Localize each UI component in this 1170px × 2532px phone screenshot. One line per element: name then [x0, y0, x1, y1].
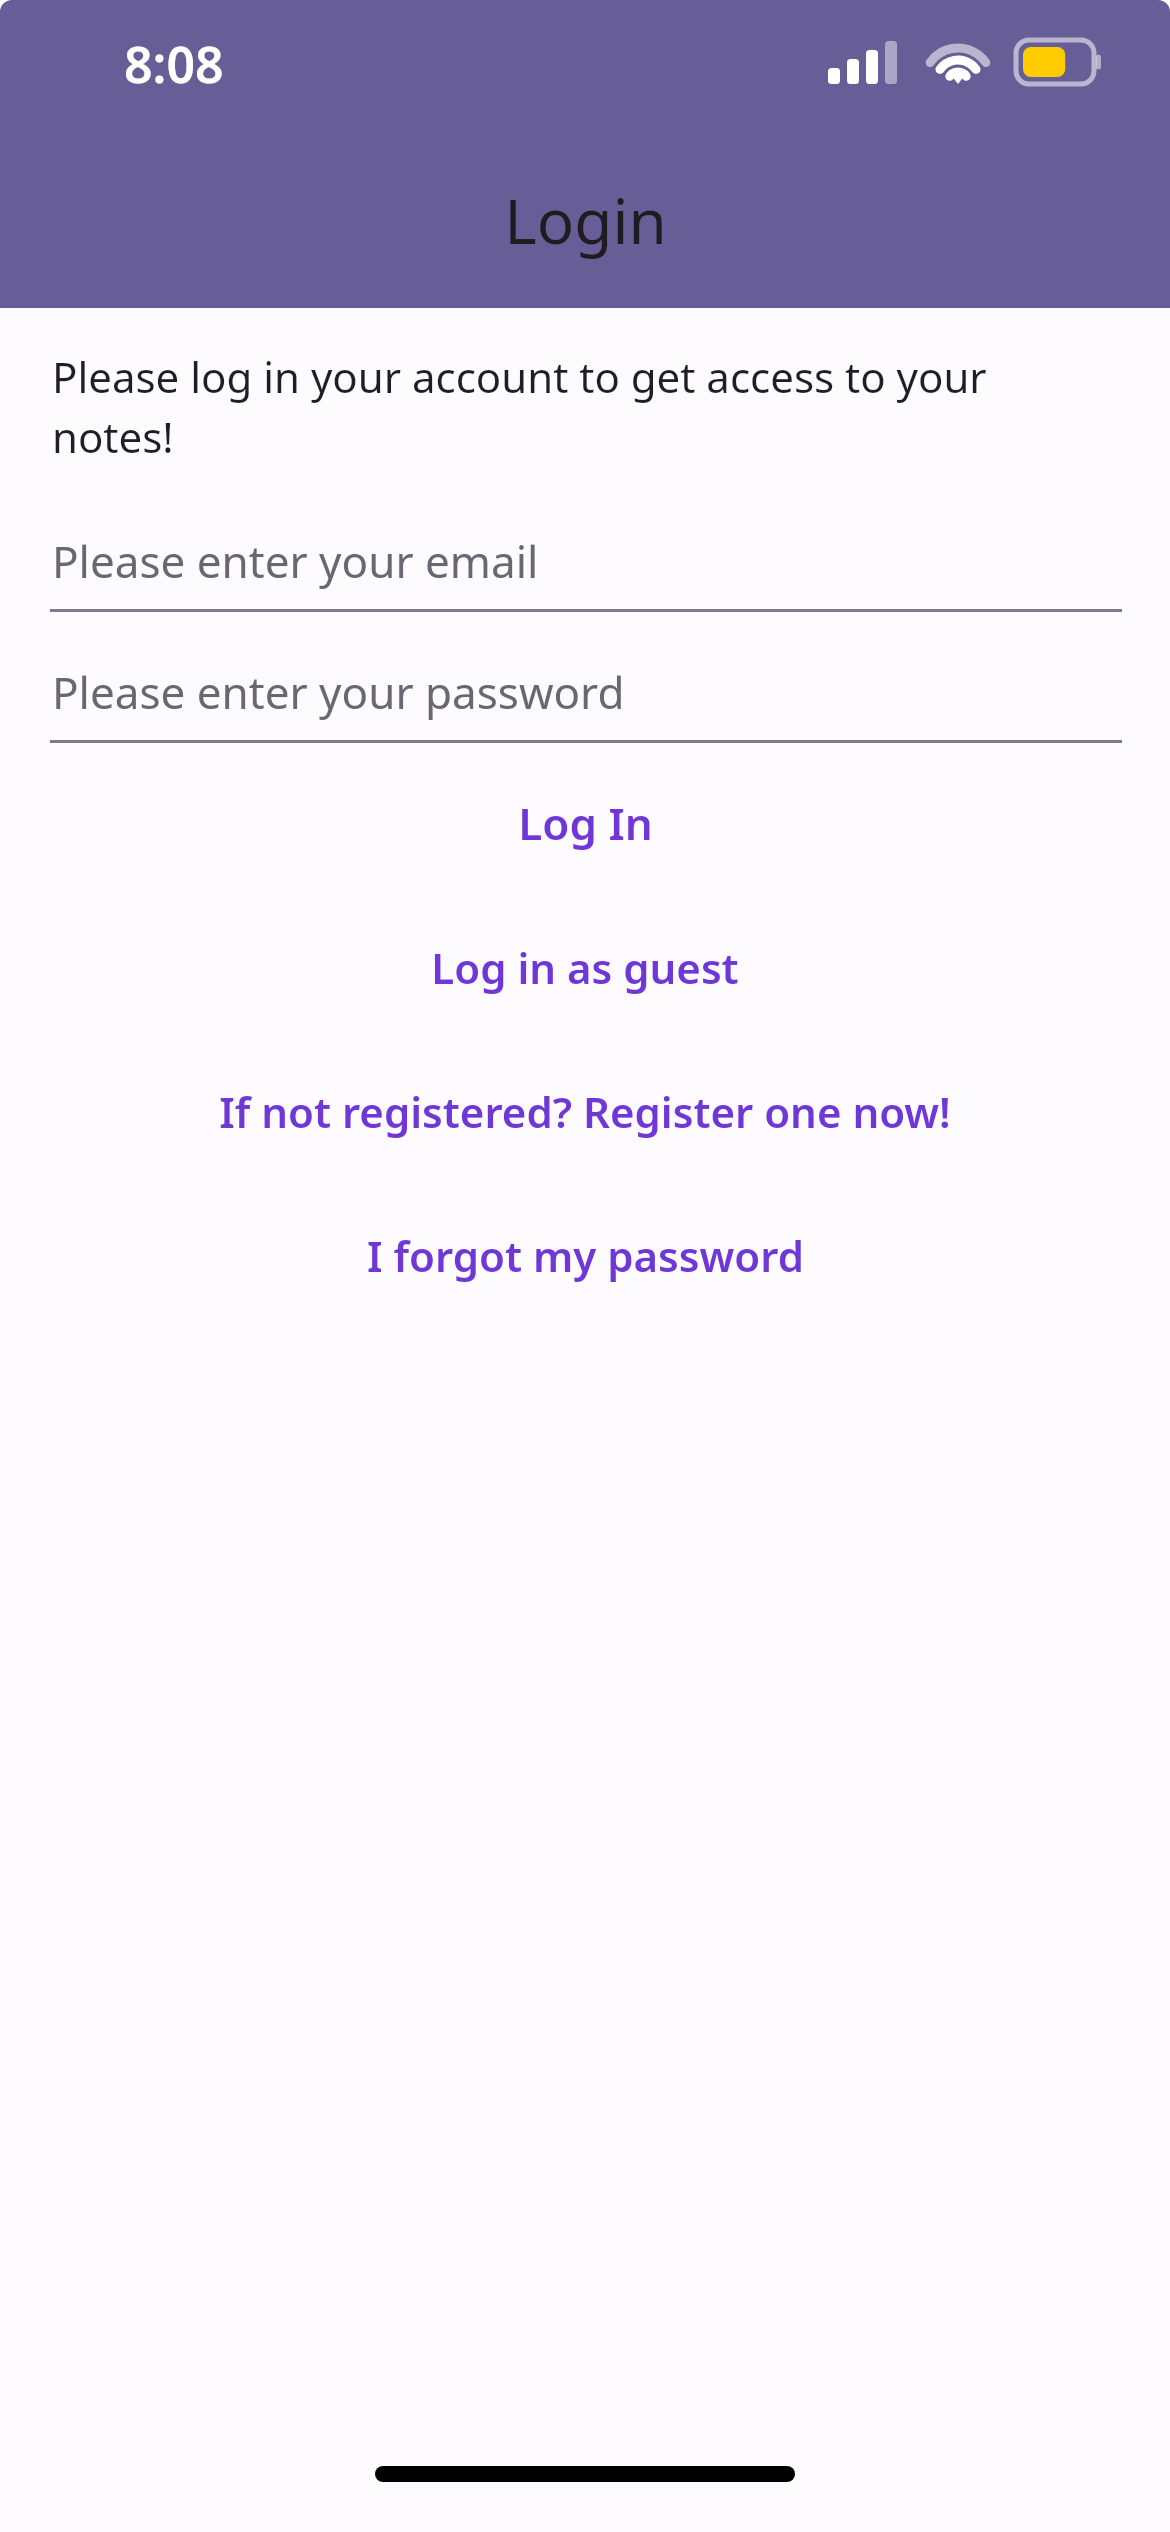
- staticText: I forgot my password: [367, 1227, 804, 1284]
- staticText: Please log in your account to get access…: [52, 348, 1112, 465]
- staticText: If not registered? Register one now!: [219, 1083, 951, 1140]
- staticText: 8:08: [124, 30, 224, 98]
- button[interactable]: Log In: [0, 779, 1170, 867]
- button[interactable]: Please enter your password: [0, 644, 1170, 743]
- button[interactable]: I forgot my password: [0, 1211, 1170, 1299]
- staticText: Login: [504, 178, 667, 262]
- staticText: Log in as guest: [431, 939, 739, 996]
- staticText: Please enter your password: [52, 662, 625, 722]
- button[interactable]: Please enter your email: [0, 513, 1170, 612]
- button[interactable]: If not registered? Register one now!: [0, 1067, 1170, 1155]
- staticText: Log In: [518, 793, 653, 853]
- staticText: Please enter your email: [52, 531, 539, 591]
- button[interactable]: Log in as guest: [0, 923, 1170, 1011]
